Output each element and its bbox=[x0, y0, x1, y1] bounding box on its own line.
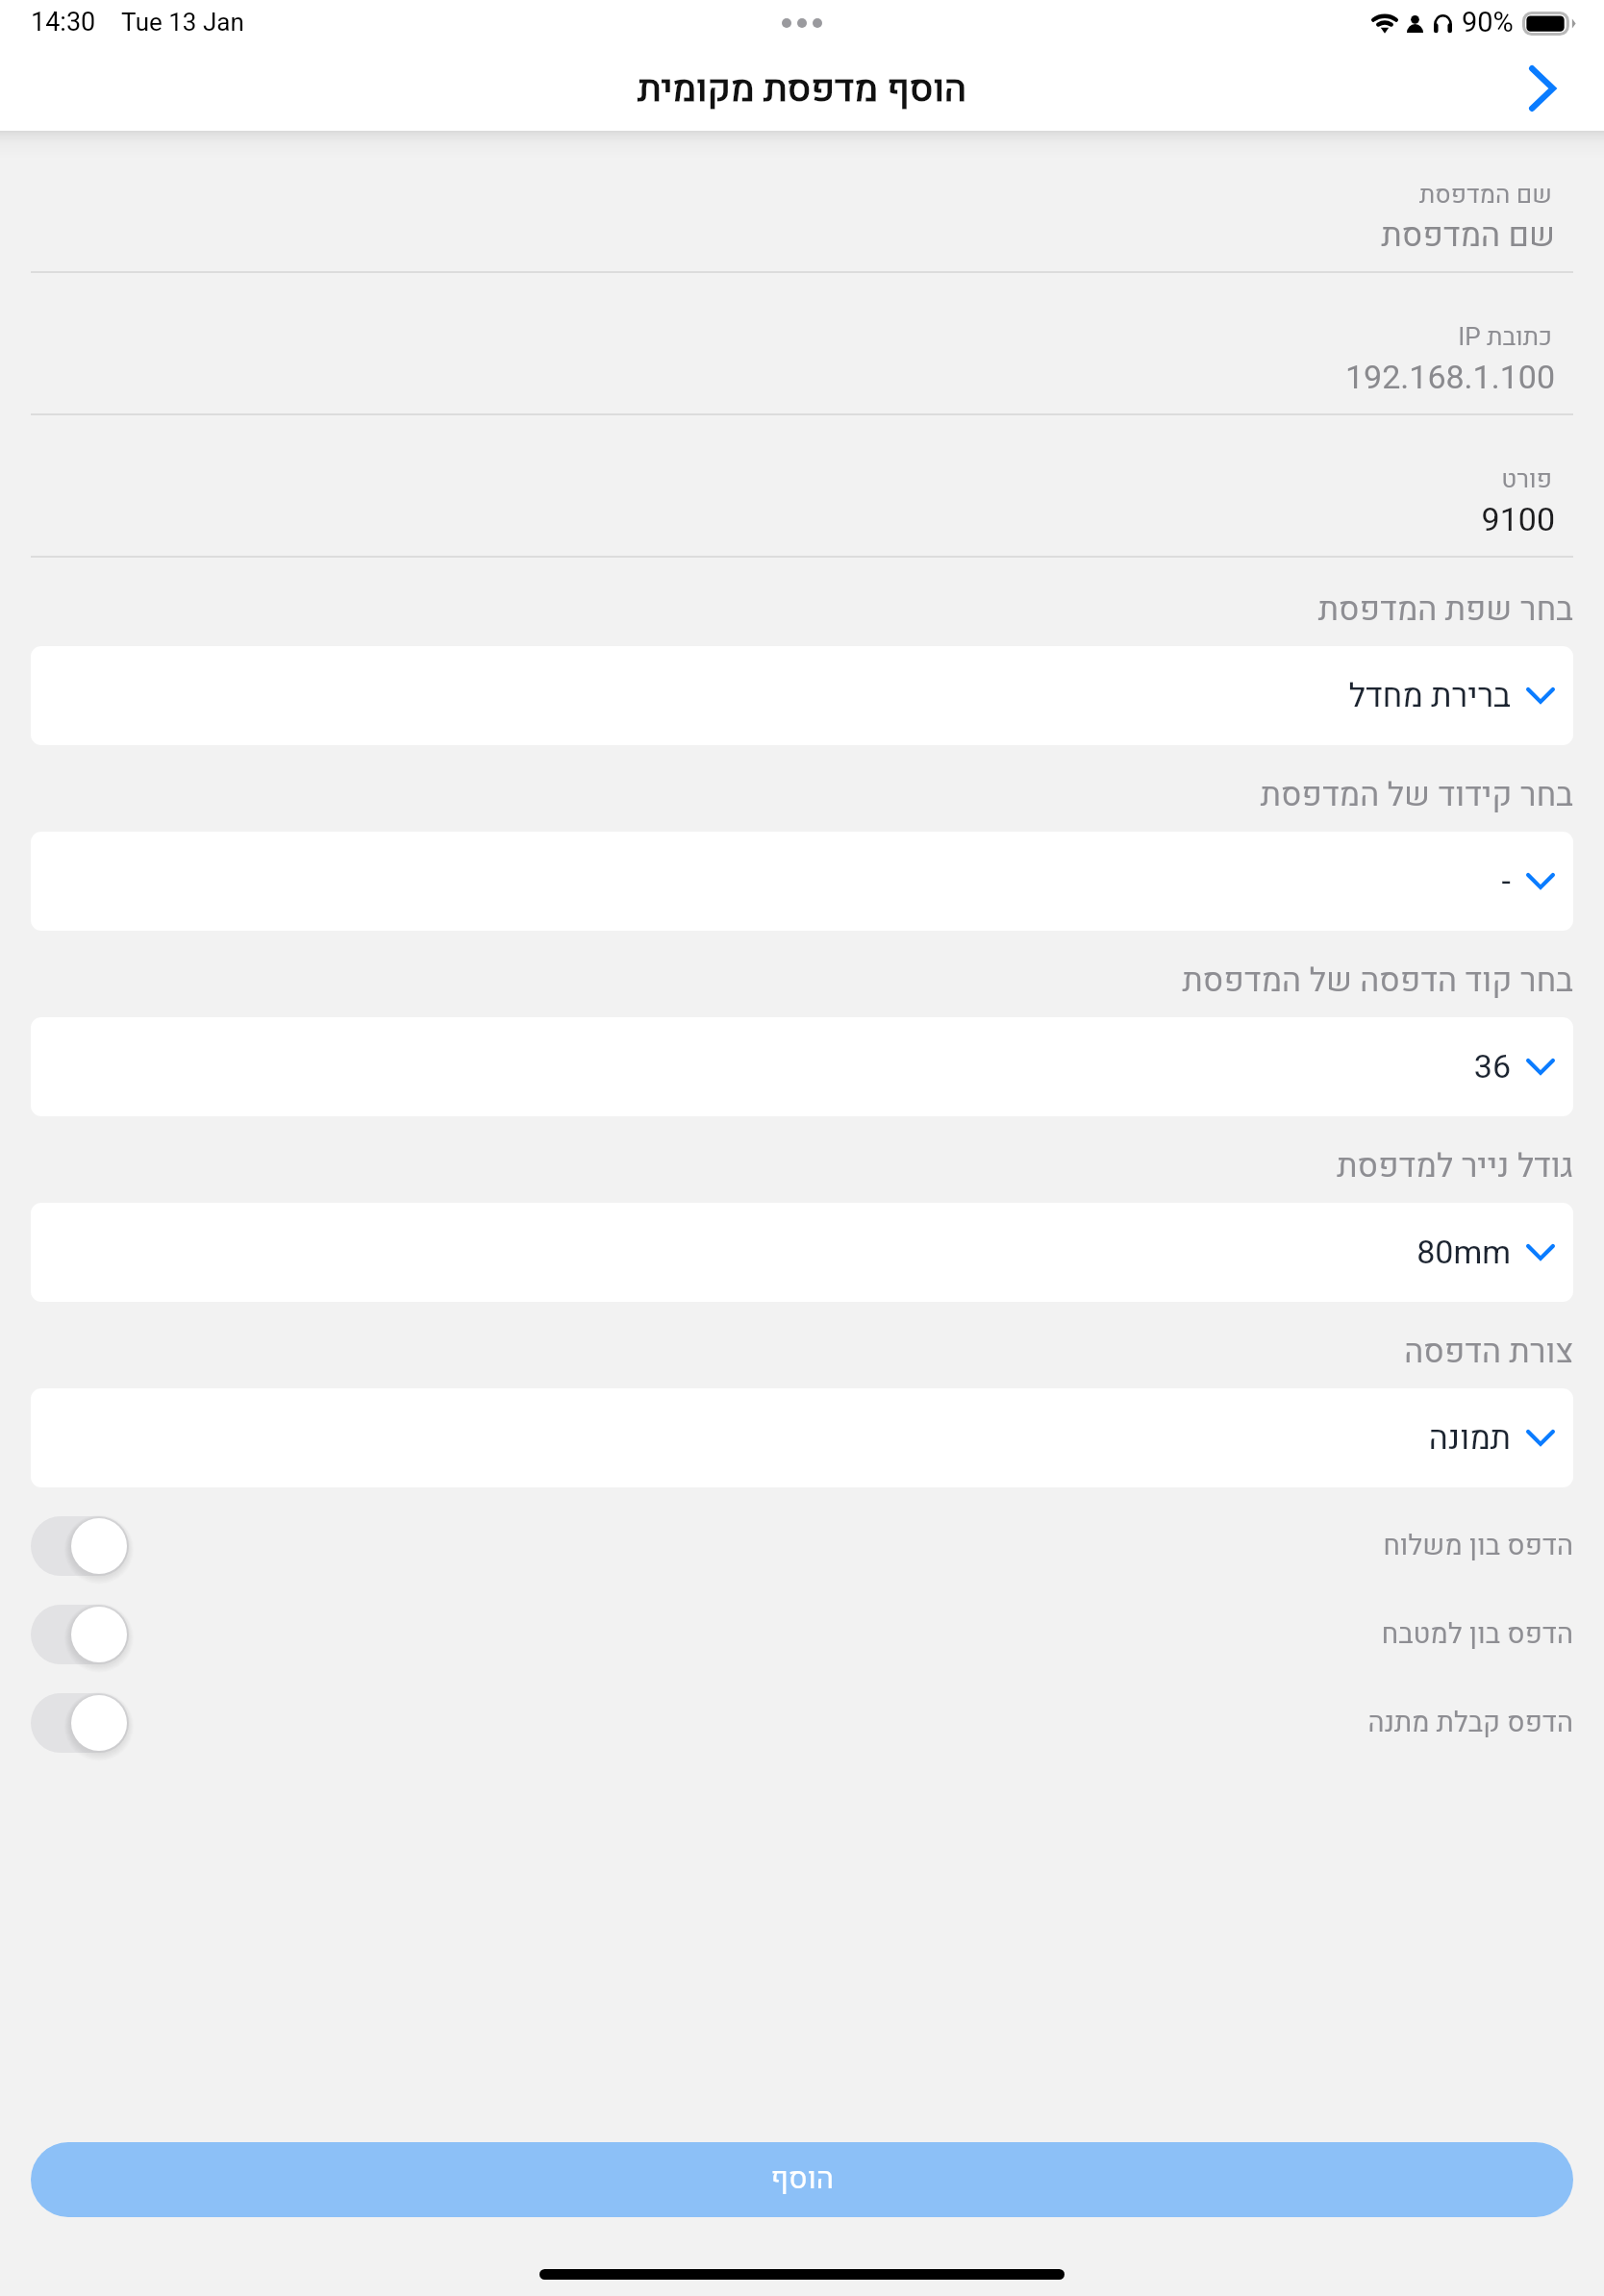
staticText: 90% bbox=[1462, 3, 1514, 44]
staticText: - bbox=[1501, 858, 1511, 906]
staticText: 192.168.1.100 bbox=[1344, 354, 1555, 402]
button[interactable]: תמונה bbox=[31, 1388, 1573, 1487]
button[interactable]: 80mm bbox=[31, 1203, 1573, 1302]
button[interactable]: הדפס בון למטבח bbox=[0, 1605, 1604, 1664]
staticText: הוסף bbox=[770, 2158, 834, 2202]
staticText: 14:30 bbox=[31, 4, 96, 42]
button[interactable]: הדפס בון משלוח bbox=[0, 1516, 1604, 1576]
button[interactable]: - bbox=[31, 832, 1573, 931]
button[interactable]: 36 bbox=[31, 1017, 1573, 1116]
staticText: בחר קוד הדפסה של המדפסת bbox=[1182, 957, 1573, 1005]
staticText: בחר קידוד של המדפסת bbox=[1260, 771, 1573, 819]
button[interactable]: הדפס קבלת מתנה bbox=[0, 1693, 1604, 1753]
staticText: 80mm bbox=[1416, 1229, 1511, 1277]
staticText: Tue 13 Jan bbox=[121, 5, 244, 41]
button[interactable]: Back bbox=[1504, 50, 1581, 127]
staticText: פורט bbox=[1501, 462, 1552, 498]
staticText: בחר שפת המדפסת bbox=[1317, 586, 1573, 634]
staticText: גודל נייר למדפסת bbox=[1337, 1142, 1573, 1190]
staticText: הדפס בון למטבח bbox=[1381, 1614, 1573, 1656]
staticText: שם המדפסת bbox=[1418, 177, 1552, 213]
button[interactable]: ברירת מחדל bbox=[31, 646, 1573, 745]
staticText: תמונה bbox=[1428, 1414, 1511, 1462]
button[interactable]: הוסף bbox=[31, 2142, 1573, 2217]
staticText: הדפס קבלת מתנה bbox=[1367, 1703, 1573, 1744]
staticText: הוסף מדפסת מקומית bbox=[638, 62, 966, 116]
staticText: 9100 bbox=[1481, 496, 1555, 544]
staticText: הדפס בון משלוח bbox=[1383, 1526, 1573, 1567]
staticText: ברירת מחדל bbox=[1348, 672, 1511, 720]
staticText: כתובת IP bbox=[1458, 319, 1552, 356]
staticText: צורת הדפסה bbox=[1404, 1328, 1573, 1376]
staticText: שם המדפסת bbox=[1381, 212, 1555, 260]
staticText: 36 bbox=[1473, 1043, 1511, 1091]
